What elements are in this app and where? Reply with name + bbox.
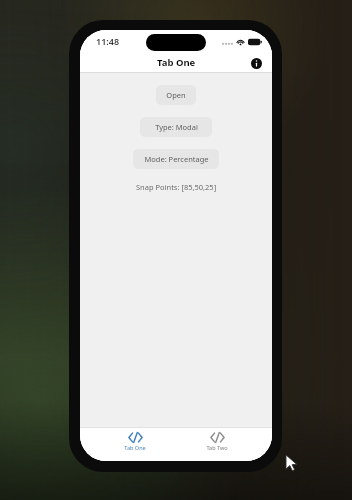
button[interactable]: Open [156,85,196,105]
button[interactable]: Mode: Percentage [133,149,219,169]
staticText: Mode: Percentage [144,154,209,164]
button[interactable]: Info [248,55,264,71]
staticText: Tab One [157,56,196,69]
staticText: Type: Modal [155,122,198,132]
button[interactable]: Tab Two [191,431,243,452]
staticText: Open [166,90,186,100]
button[interactable]: Type: Modal [140,117,212,137]
staticText: 11:48 [96,35,120,47]
button[interactable]: Tab One [109,431,161,452]
staticText: Tab One [124,444,146,451]
staticText: Tab Two [206,444,228,451]
staticText: Snap Points: [85,50,25] [136,182,217,192]
